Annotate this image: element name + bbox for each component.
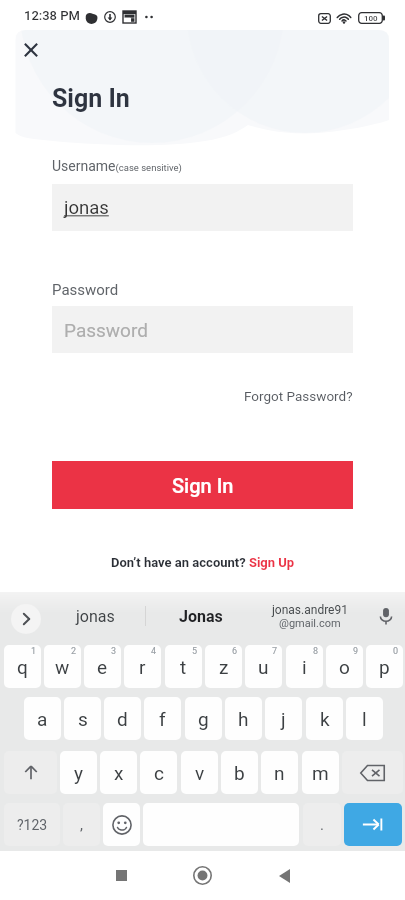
button[interactable]: g	[185, 697, 222, 740]
button[interactable]: l	[346, 697, 383, 740]
staticText: 4	[151, 646, 157, 657]
staticText: l	[362, 708, 367, 730]
button[interactable]: i	[286, 645, 323, 688]
button[interactable]: q	[4, 645, 41, 688]
button[interactable]: m	[302, 751, 339, 794]
button[interactable]: d	[104, 697, 141, 740]
staticText: 8	[313, 646, 319, 657]
button[interactable]: .	[303, 803, 341, 846]
staticText: ,	[80, 816, 83, 834]
button[interactable]: t	[165, 645, 202, 688]
button[interactable]: Sign In	[52, 461, 353, 509]
staticText: 1	[31, 646, 37, 657]
staticText: s	[78, 708, 88, 730]
button[interactable]: y	[60, 751, 97, 794]
staticText: n	[274, 762, 285, 784]
staticText: 9	[353, 646, 359, 657]
staticText: q	[17, 656, 28, 678]
staticText: m	[312, 762, 329, 784]
button[interactable]: More suggestions	[11, 604, 41, 634]
staticText: e	[97, 656, 108, 678]
button[interactable]: Forgot Password?	[244, 388, 353, 404]
staticText: x	[114, 762, 124, 784]
button[interactable]: a	[24, 697, 61, 740]
button[interactable]: s	[64, 697, 101, 740]
button[interactable]: p	[366, 645, 403, 688]
staticText: u	[258, 656, 269, 678]
staticText: Sign In	[172, 474, 234, 497]
staticText: Sign In	[52, 84, 130, 113]
staticText: Password	[52, 281, 119, 299]
staticText: v	[195, 762, 205, 784]
staticText: o	[339, 656, 350, 678]
button[interactable]: x	[100, 751, 137, 794]
staticText: Jonas	[179, 607, 223, 626]
staticText: g	[198, 708, 209, 730]
button[interactable]: o	[326, 645, 363, 688]
button[interactable]: Password	[52, 306, 353, 353]
staticText: t	[180, 656, 187, 678]
staticText: Don’t have an account? Sign Up	[111, 555, 295, 570]
button[interactable]: Don’t have an account? Sign Up	[111, 555, 295, 570]
staticText: j	[281, 708, 286, 730]
button[interactable]: h	[225, 697, 262, 740]
staticText: @gmail.com	[279, 617, 341, 630]
button[interactable]: ,	[63, 803, 100, 846]
button[interactable]: Shift	[4, 751, 57, 794]
button[interactable]: Home	[180, 851, 224, 900]
staticText: jonas	[64, 197, 109, 219]
button[interactable]: jonas.andre91	[255, 592, 365, 640]
staticText: 6	[232, 646, 238, 657]
button[interactable]: b	[221, 751, 258, 794]
button[interactable]: Voice input	[367, 592, 405, 640]
staticText: Forgot Password?	[244, 388, 353, 404]
button[interactable]: z	[205, 645, 242, 688]
staticText: jonas.andre91	[272, 603, 348, 617]
button[interactable]: jonas	[52, 184, 353, 231]
staticText: z	[219, 656, 229, 678]
button[interactable]: jonas	[48, 592, 143, 640]
staticText: f	[159, 708, 166, 730]
button[interactable]: Close	[19, 38, 43, 62]
button[interactable]: r	[124, 645, 161, 688]
button[interactable]: k	[306, 697, 343, 740]
button[interactable]: n	[261, 751, 298, 794]
staticText: i	[302, 656, 307, 678]
button[interactable]: e	[84, 645, 121, 688]
staticText: Username(case sensitive)	[52, 158, 182, 174]
button[interactable]: u	[245, 645, 282, 688]
staticText: 5	[192, 646, 198, 657]
button[interactable]: Next	[344, 803, 402, 846]
staticText: r	[139, 656, 146, 678]
staticText: d	[117, 708, 128, 730]
staticText: y	[74, 762, 83, 784]
staticText: w	[55, 656, 70, 678]
staticText: 100	[364, 14, 378, 23]
button[interactable]: j	[265, 697, 302, 740]
button[interactable]: Jonas	[148, 592, 253, 640]
button[interactable]: Back	[262, 851, 306, 900]
staticText: k	[320, 708, 330, 730]
staticText: .	[320, 816, 324, 834]
button[interactable]: c	[140, 751, 177, 794]
button[interactable]: w	[44, 645, 81, 688]
staticText: p	[379, 656, 390, 678]
button[interactable]: Emoji	[103, 803, 140, 846]
staticText: 2	[71, 646, 77, 657]
staticText: ?123	[17, 817, 48, 833]
staticText: h	[238, 708, 249, 730]
staticText: 7	[272, 646, 278, 657]
staticText: jonas	[76, 607, 115, 626]
staticText: Password	[64, 319, 148, 341]
staticText: 3	[111, 646, 117, 657]
button[interactable]: f	[144, 697, 181, 740]
staticText: c	[154, 762, 164, 784]
button[interactable]: Recents	[99, 851, 143, 900]
button[interactable]: ?123	[4, 803, 60, 846]
button[interactable]: Backspace	[342, 751, 403, 794]
staticText: 0	[393, 646, 399, 657]
staticText: 12:38 PM	[24, 8, 80, 23]
button[interactable]: v	[181, 751, 218, 794]
staticText: b	[234, 762, 245, 784]
